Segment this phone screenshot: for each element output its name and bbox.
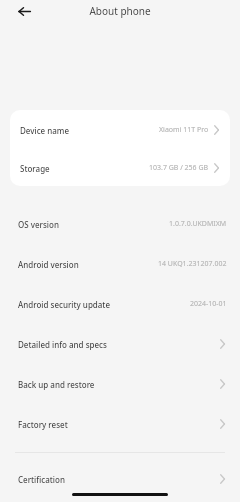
staticText: 103.7 GB / 256 GB bbox=[149, 163, 209, 173]
staticText: 1.0.7.0.UKDMIXM bbox=[169, 219, 227, 229]
staticText: Detailed info and specs bbox=[18, 339, 107, 350]
staticText: Xiaomi 11T Pro bbox=[159, 125, 209, 135]
staticText: 2024-10-01 bbox=[190, 299, 227, 309]
staticText: Back up and restore bbox=[18, 379, 95, 390]
staticText: OS version bbox=[18, 219, 59, 230]
button[interactable]: Android version bbox=[0, 244, 240, 284]
staticText: Android security update bbox=[18, 299, 111, 310]
staticText: Device name bbox=[20, 125, 70, 136]
button[interactable]: Factory reset bbox=[0, 404, 240, 444]
staticText: Android version bbox=[18, 259, 79, 270]
staticText: 14 UKQ1.231207.002 bbox=[158, 259, 227, 269]
button[interactable]: Back bbox=[13, 0, 35, 22]
staticText: Certification bbox=[18, 474, 65, 485]
staticText: Factory reset bbox=[18, 419, 68, 430]
button[interactable]: Device name bbox=[10, 110, 230, 150]
button[interactable]: Android security update bbox=[0, 284, 240, 324]
button[interactable]: Storage bbox=[10, 150, 230, 186]
button[interactable]: OS version bbox=[0, 204, 240, 244]
staticText: About phone bbox=[89, 4, 151, 18]
staticText: Storage bbox=[20, 163, 50, 174]
button[interactable]: Certification bbox=[0, 463, 240, 495]
button[interactable]: Detailed info and specs bbox=[0, 324, 240, 364]
button[interactable]: Back up and restore bbox=[0, 364, 240, 404]
